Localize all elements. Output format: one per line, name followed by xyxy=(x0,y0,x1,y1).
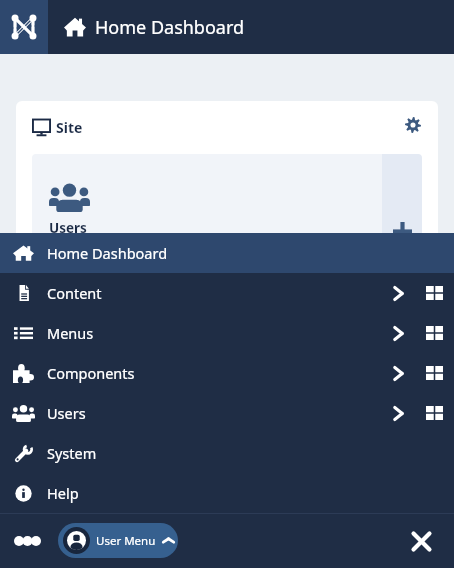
button[interactable]: System xyxy=(0,433,454,473)
button[interactable]: Home Dashboard xyxy=(48,0,454,54)
button[interactable]: Components xyxy=(0,353,454,393)
button[interactable]: Expand Components xyxy=(382,353,414,393)
button[interactable]: Menus xyxy=(0,313,454,353)
staticText: User Menu xyxy=(96,533,156,549)
button[interactable]: Menus dashboard xyxy=(414,313,454,353)
button[interactable]: Expand Users xyxy=(382,393,414,433)
staticText: Home Dashboard xyxy=(47,243,168,263)
staticText: Users xyxy=(47,403,86,423)
button[interactable]: Content dashboard xyxy=(414,273,454,313)
button[interactable]: Help xyxy=(0,473,454,513)
button[interactable]: More options xyxy=(5,519,49,563)
button[interactable]: Close menu xyxy=(397,517,445,565)
button[interactable]: Add user xyxy=(382,154,422,264)
button[interactable]: Home Dashboard xyxy=(0,233,454,273)
button[interactable]: Users dashboard xyxy=(414,393,454,433)
staticText: Menus xyxy=(47,323,94,343)
button[interactable]: Expand Menus xyxy=(382,313,414,353)
staticText: Content xyxy=(47,283,102,303)
staticText: Site xyxy=(56,118,83,137)
button[interactable]: Content xyxy=(0,273,454,313)
button[interactable]: Joomla xyxy=(0,0,48,54)
staticText: Help xyxy=(47,483,79,503)
button[interactable]: User Menu xyxy=(58,523,178,558)
button[interactable]: Components dashboard xyxy=(414,353,454,393)
button[interactable]: Users xyxy=(32,154,382,264)
staticText: Users xyxy=(49,219,87,237)
button[interactable]: Users xyxy=(0,393,454,433)
staticText: Components xyxy=(47,363,135,383)
button[interactable]: Site settings xyxy=(399,114,427,142)
button[interactable]: Expand Content xyxy=(382,273,414,313)
staticText: Home Dashboard xyxy=(95,15,245,40)
staticText: System xyxy=(47,443,97,463)
